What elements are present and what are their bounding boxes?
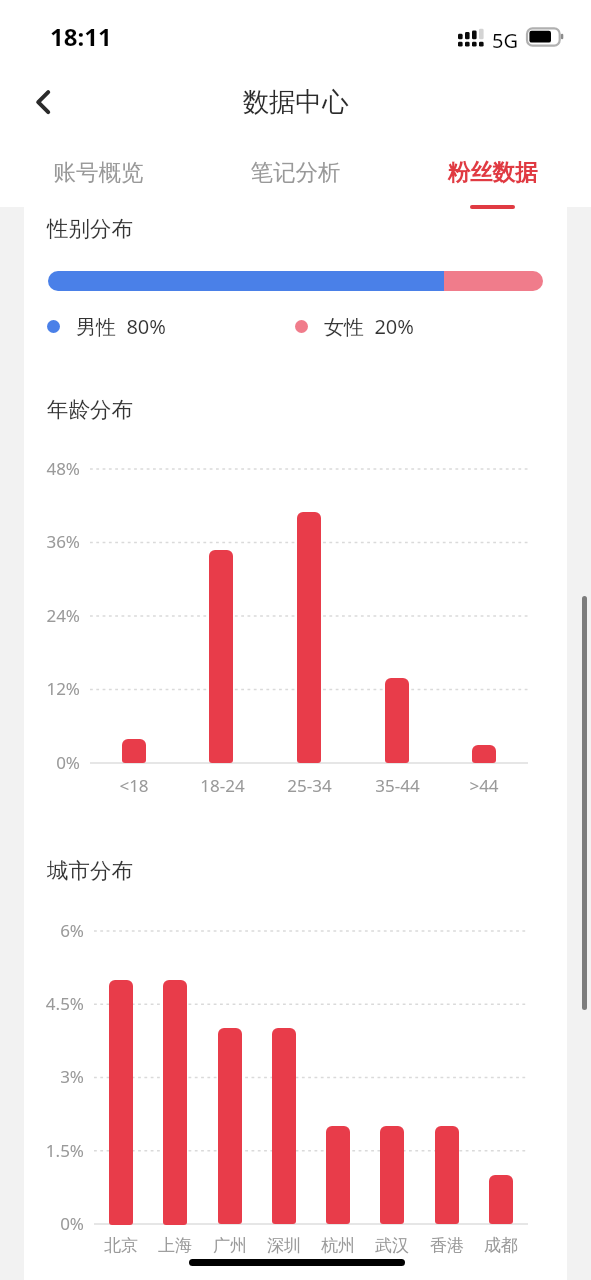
- button[interactable]: [109, 980, 133, 1225]
- button[interactable]: 女性 20%: [295, 313, 414, 340]
- button[interactable]: 男性 80%: [47, 313, 166, 340]
- staticText: 24%: [8, 604, 80, 627]
- button[interactable]: 账号概览: [0, 140, 197, 207]
- staticText: <18: [119, 774, 149, 797]
- staticText: 数据中心: [0, 85, 591, 118]
- staticText: 35-44: [375, 774, 420, 797]
- staticText: 性别分布: [47, 215, 133, 242]
- staticText: >44: [469, 774, 499, 797]
- button[interactable]: [380, 1126, 404, 1224]
- staticText: 18-24: [200, 774, 245, 797]
- button[interactable]: [326, 1126, 350, 1224]
- staticText: 账号概览: [0, 158, 197, 186]
- staticText: 12%: [8, 677, 80, 700]
- staticText: 5G: [492, 27, 518, 54]
- button[interactable]: [209, 550, 233, 763]
- button[interactable]: [122, 739, 146, 763]
- staticText: 0%: [8, 751, 80, 774]
- button[interactable]: [489, 1175, 513, 1224]
- staticText: 杭州: [321, 1235, 355, 1256]
- staticText: 城市分布: [47, 857, 133, 884]
- button[interactable]: [297, 512, 321, 763]
- button[interactable]: [472, 745, 496, 763]
- staticText: 0%: [8, 1212, 84, 1235]
- staticText: 笔记分析: [197, 158, 394, 186]
- staticText: 成都: [484, 1235, 518, 1256]
- staticText: 1.5%: [8, 1139, 84, 1162]
- staticText: 6%: [8, 919, 84, 942]
- other: Cellular signal: [458, 28, 486, 48]
- staticText: 香港: [430, 1235, 464, 1256]
- staticText: 4.5%: [8, 992, 84, 1015]
- button[interactable]: [48, 271, 543, 291]
- button[interactable]: [163, 980, 187, 1225]
- staticText: 男性 80%: [76, 313, 166, 340]
- staticText: 36%: [8, 530, 80, 553]
- button[interactable]: Back: [14, 78, 62, 126]
- staticText: 3%: [8, 1065, 84, 1088]
- staticText: 年龄分布: [47, 396, 133, 423]
- staticText: 25-34: [287, 774, 332, 797]
- staticText: 18:11: [50, 20, 112, 53]
- button[interactable]: 笔记分析: [197, 140, 394, 207]
- button[interactable]: [385, 678, 409, 763]
- button[interactable]: [272, 1028, 296, 1224]
- button[interactable]: 粉丝数据: [394, 140, 591, 207]
- button[interactable]: [435, 1126, 459, 1224]
- staticText: 深圳: [267, 1235, 301, 1256]
- staticText: 粉丝数据: [394, 158, 591, 186]
- staticText: 48%: [8, 457, 80, 480]
- staticText: 女性 20%: [324, 313, 414, 340]
- staticText: 上海: [158, 1235, 192, 1256]
- staticText: 广州: [213, 1235, 247, 1256]
- button[interactable]: [218, 1028, 242, 1224]
- staticText: 北京: [104, 1235, 138, 1256]
- staticText: 武汉: [375, 1235, 409, 1256]
- other: Battery: [526, 28, 564, 46]
